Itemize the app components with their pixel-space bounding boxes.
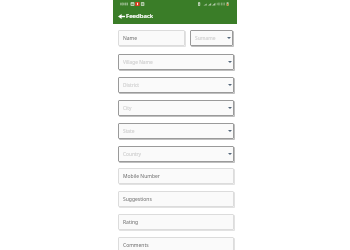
button[interactable]: City bbox=[118, 100, 234, 116]
button[interactable]: Country bbox=[118, 146, 234, 162]
button[interactable]: Back bbox=[117, 10, 126, 22]
staticText: City bbox=[123, 105, 132, 112]
button[interactable]: Mobile Number bbox=[118, 168, 234, 184]
staticText: Suggestions bbox=[123, 196, 152, 203]
button[interactable]: Rating bbox=[118, 214, 234, 230]
staticText: Name bbox=[123, 35, 138, 42]
staticText: Country bbox=[123, 151, 142, 158]
button[interactable]: Village Name bbox=[118, 54, 234, 70]
button[interactable]: Comments bbox=[118, 237, 234, 250]
staticText: State bbox=[123, 128, 135, 135]
staticText: Mobile Number bbox=[123, 173, 160, 180]
button[interactable]: State bbox=[118, 123, 234, 139]
button[interactable]: District bbox=[118, 77, 234, 93]
staticText: Comments bbox=[123, 242, 149, 249]
staticText: Surname bbox=[195, 35, 216, 42]
staticText: District bbox=[123, 82, 140, 89]
button[interactable]: Surname bbox=[190, 30, 233, 46]
button[interactable]: Name bbox=[118, 30, 185, 46]
staticText: Rating bbox=[123, 219, 139, 226]
staticText: Feedback bbox=[126, 12, 154, 20]
button[interactable]: Suggestions bbox=[118, 191, 234, 207]
staticText: Village Name bbox=[123, 59, 153, 66]
